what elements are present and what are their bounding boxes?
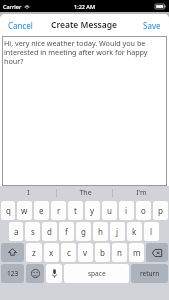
button[interactable]: return — [131, 264, 168, 283]
button[interactable]: v — [78, 243, 93, 262]
staticText: I'm — [136, 188, 147, 198]
button[interactable]: t — [68, 201, 83, 220]
staticText: c — [67, 247, 71, 258]
staticText: e — [39, 205, 44, 216]
button[interactable]: u — [102, 201, 117, 220]
staticText: return — [140, 269, 160, 278]
button[interactable]: Backspace — [146, 243, 168, 262]
button[interactable]: s — [25, 222, 40, 241]
button[interactable]: Cancel — [0, 16, 41, 35]
staticText: i — [125, 205, 128, 216]
button[interactable]: l — [144, 222, 159, 241]
button[interactable]: m — [129, 243, 144, 262]
button[interactable]: Emoji — [26, 264, 44, 283]
staticText: l — [150, 226, 153, 237]
staticText: Create Message — [51, 19, 118, 31]
button[interactable]: Dictate — [46, 264, 62, 283]
staticText: Cancel — [8, 20, 33, 31]
button[interactable]: q — [1, 201, 15, 220]
staticText: d — [47, 226, 52, 237]
button[interactable]: a — [9, 222, 23, 241]
staticText: p — [158, 205, 163, 216]
button[interactable]: j — [110, 222, 125, 241]
staticText: g — [81, 226, 86, 237]
staticText: w — [21, 205, 28, 216]
staticText: 123 — [7, 269, 19, 278]
button[interactable]: z — [26, 243, 42, 262]
staticText: s — [31, 226, 35, 237]
button[interactable]: w — [17, 201, 32, 220]
staticText: h — [98, 226, 103, 237]
button[interactable]: The — [57, 186, 113, 200]
staticText: Carrier — [3, 3, 22, 10]
button[interactable]: o — [136, 201, 151, 220]
staticText: space — [88, 269, 106, 278]
staticText: z — [32, 247, 36, 258]
staticText: r — [57, 205, 61, 216]
button[interactable]: p — [153, 201, 168, 220]
button[interactable]: g — [76, 222, 91, 241]
staticText: I — [27, 188, 30, 198]
staticText: q — [6, 205, 11, 216]
button[interactable]: n — [112, 243, 127, 262]
button[interactable]: k — [127, 222, 142, 241]
staticText: t — [74, 205, 77, 216]
button[interactable]: y — [85, 201, 100, 220]
staticText: n — [117, 247, 122, 258]
staticText: f — [65, 226, 68, 237]
button[interactable]: b — [95, 243, 110, 262]
staticText: The — [79, 188, 92, 198]
button[interactable]: I'm — [113, 186, 169, 200]
staticText: o — [141, 205, 146, 216]
button[interactable]: Save — [135, 16, 169, 35]
button[interactable]: 123 — [1, 264, 24, 283]
staticText: y — [90, 205, 95, 216]
button[interactable]: e — [34, 201, 49, 220]
button[interactable]: Shift — [1, 243, 24, 262]
button[interactable]: r — [51, 201, 66, 220]
staticText: u — [107, 205, 112, 216]
staticText: k — [132, 226, 137, 237]
staticText: Hi, very nice weather today. Would you b… — [4, 38, 165, 66]
staticText: x — [49, 247, 54, 258]
button[interactable]: space — [64, 264, 129, 283]
staticText: a — [14, 226, 19, 237]
button[interactable]: d — [42, 222, 57, 241]
staticText: j — [116, 226, 119, 237]
button[interactable]: Hi, very nice weather today. Would you b… — [2, 36, 167, 186]
staticText: m — [133, 247, 141, 258]
staticText: b — [100, 247, 105, 258]
button[interactable]: I — [0, 186, 57, 200]
button[interactable]: f — [59, 222, 74, 241]
button[interactable]: x — [44, 243, 59, 262]
staticText: 1:22 AM — [74, 3, 96, 10]
staticText: Save — [143, 20, 161, 31]
button[interactable]: i — [119, 201, 134, 220]
staticText: v — [83, 247, 88, 258]
button[interactable]: c — [61, 243, 76, 262]
button[interactable]: h — [93, 222, 108, 241]
